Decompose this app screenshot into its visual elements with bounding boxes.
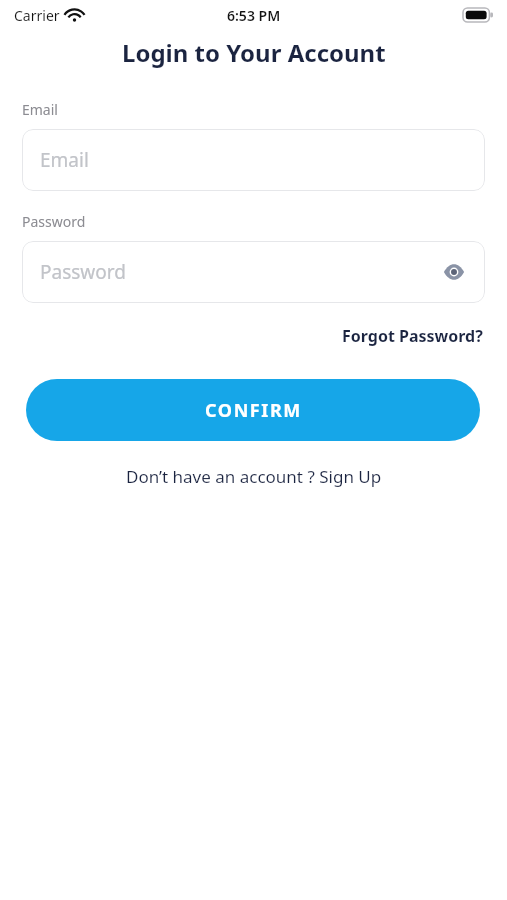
staticText: Email bbox=[40, 147, 89, 173]
staticText: 6:53 PM bbox=[227, 6, 281, 25]
button[interactable]: Email bbox=[22, 129, 485, 191]
staticText: Don’t have an account ? Sign Up bbox=[126, 465, 382, 488]
button[interactable]: Forgot Password? bbox=[340, 321, 485, 351]
button[interactable]: Show password bbox=[437, 255, 471, 289]
staticText: Password bbox=[22, 212, 86, 231]
button[interactable]: Don’t have an account ? Sign Up bbox=[122, 461, 386, 492]
button[interactable]: Password bbox=[22, 241, 485, 303]
staticText: Login to Your Account bbox=[122, 36, 386, 69]
staticText: Forgot Password? bbox=[342, 325, 483, 347]
staticText: Carrier bbox=[14, 6, 60, 25]
staticText: Password bbox=[40, 259, 126, 285]
button[interactable]: CONFIRM bbox=[26, 379, 480, 441]
staticText: Email bbox=[22, 100, 58, 119]
staticText: CONFIRM bbox=[205, 398, 302, 423]
